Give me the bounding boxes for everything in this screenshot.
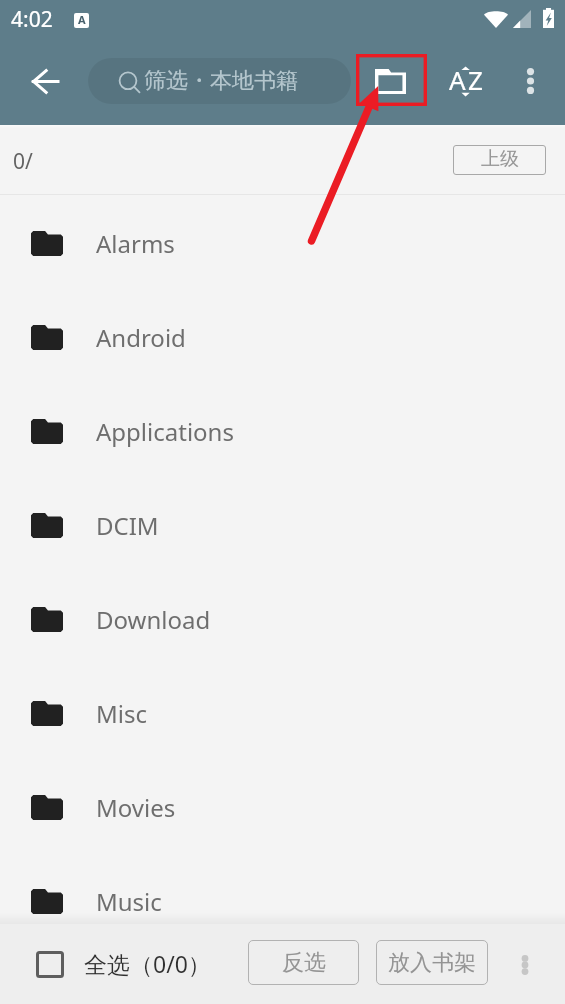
staticText: 放入书架 bbox=[388, 949, 476, 977]
staticText: Alarms bbox=[96, 227, 175, 260]
button[interactable]: Music bbox=[0, 854, 565, 924]
staticText: Misc bbox=[96, 697, 147, 730]
staticText: 全选（0/0） bbox=[84, 948, 211, 979]
staticText: Download bbox=[96, 603, 211, 636]
staticText: Applications bbox=[96, 415, 234, 448]
staticText: A bbox=[78, 13, 86, 27]
button[interactable]: DCIM bbox=[0, 478, 565, 572]
button[interactable]: 放入书架 bbox=[376, 940, 488, 985]
button[interactable]: Folder bbox=[366, 57, 414, 105]
button[interactable]: Download bbox=[0, 572, 565, 666]
button[interactable]: More options bbox=[506, 57, 554, 105]
button[interactable]: Back bbox=[21, 57, 69, 105]
button[interactable]: Movies bbox=[0, 760, 565, 854]
staticText: 筛选・本地书籍 bbox=[144, 67, 298, 95]
button[interactable]: Misc bbox=[0, 666, 565, 760]
staticText: 上级 bbox=[481, 147, 519, 171]
button[interactable]: Alarms bbox=[0, 196, 565, 290]
staticText: Android bbox=[96, 321, 186, 354]
staticText: Movies bbox=[96, 791, 176, 824]
staticText: Z bbox=[468, 62, 483, 97]
button[interactable]: 全选（0/0） bbox=[36, 940, 211, 988]
button[interactable]: 上级 bbox=[453, 145, 546, 175]
staticText: 0/ bbox=[13, 147, 33, 176]
button[interactable]: Android bbox=[0, 290, 565, 384]
button[interactable]: 筛选・本地书籍 bbox=[88, 58, 351, 104]
staticText: A bbox=[449, 62, 466, 97]
staticText: Music bbox=[96, 885, 162, 918]
button[interactable]: 反选 bbox=[248, 940, 359, 985]
button[interactable]: Sort bbox=[437, 56, 493, 112]
staticText: 反选 bbox=[282, 949, 326, 977]
button[interactable]: Applications bbox=[0, 384, 565, 478]
button[interactable]: More options bbox=[504, 944, 545, 985]
staticText: 4:02 bbox=[11, 5, 53, 34]
staticText: DCIM bbox=[96, 509, 159, 542]
